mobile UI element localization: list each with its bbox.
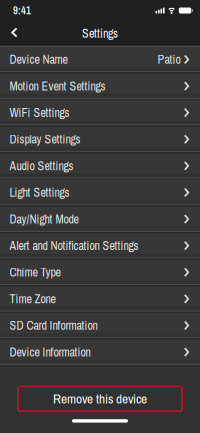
staticText: SD Card Information	[9, 318, 97, 333]
staticText: Device Information	[9, 344, 90, 360]
button[interactable]: Audio Settings	[0, 153, 200, 174]
staticText: Device Name	[9, 52, 67, 67]
staticText: WiFi Settings	[9, 105, 69, 121]
staticText: Audio Settings	[9, 158, 73, 174]
button[interactable]: Chime Type	[0, 260, 200, 281]
staticText: Alert and Notification Settings	[9, 238, 138, 254]
staticText: Display Settings	[9, 131, 80, 147]
staticText: 9:41	[13, 3, 31, 17]
staticText: Time Zone	[9, 291, 55, 307]
button[interactable]: Back	[0, 23, 18, 41]
button[interactable]: Alert and Notification Settings	[0, 233, 200, 254]
button[interactable]: Remove this device	[17, 385, 183, 412]
button[interactable]: Motion Event Settings	[0, 74, 200, 94]
button[interactable]: WiFi Settings	[0, 100, 200, 121]
staticText: Settings	[82, 25, 118, 41]
staticText: Day/Night Mode	[9, 211, 78, 227]
button[interactable]: Light Settings	[0, 180, 200, 201]
staticText: Chime Type	[9, 264, 60, 280]
button[interactable]: Device Name	[0, 47, 200, 68]
staticText: Motion Event Settings	[9, 78, 105, 94]
button[interactable]: Day/Night Mode	[0, 207, 200, 227]
staticText: Patio	[157, 52, 180, 67]
staticText: Remove this device	[53, 390, 147, 407]
button[interactable]: SD Card Information	[0, 313, 200, 334]
staticText: Light Settings	[9, 185, 69, 200]
button[interactable]: Time Zone	[0, 286, 200, 307]
button[interactable]: Display Settings	[0, 127, 200, 148]
button[interactable]: Device Information	[0, 340, 200, 360]
